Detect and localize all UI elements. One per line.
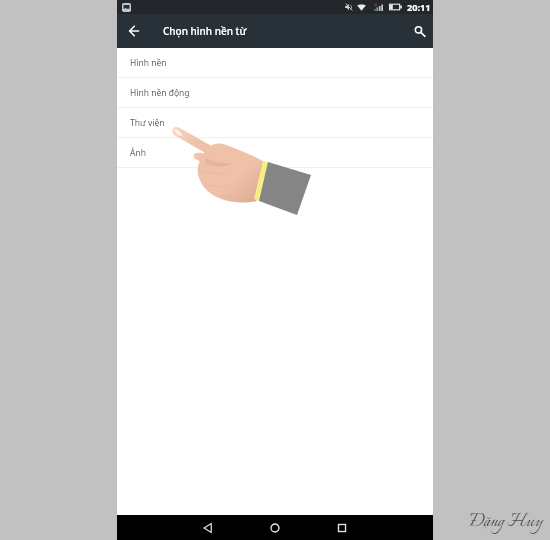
button[interactable]: Home <box>263 516 287 540</box>
button[interactable]: Hình nền động <box>117 78 433 108</box>
staticText: Hình nền <box>130 57 167 69</box>
staticText: Chọn hình nền từ <box>163 24 247 38</box>
staticText: Hình nền động <box>130 87 190 99</box>
button[interactable]: Hình nền <box>117 48 433 78</box>
staticText: Thư viện <box>130 117 165 129</box>
button[interactable]: Recents <box>330 516 354 540</box>
staticText: 20:11 <box>407 1 431 14</box>
button[interactable]: Back <box>126 22 144 40</box>
button[interactable]: Search <box>410 22 428 40</box>
button[interactable]: Back <box>196 516 220 540</box>
button[interactable]: Ảnh <box>117 138 433 168</box>
staticText: Đặng Huy <box>469 508 543 537</box>
staticText: Ảnh <box>130 147 146 159</box>
button[interactable]: Thư viện <box>117 108 433 138</box>
